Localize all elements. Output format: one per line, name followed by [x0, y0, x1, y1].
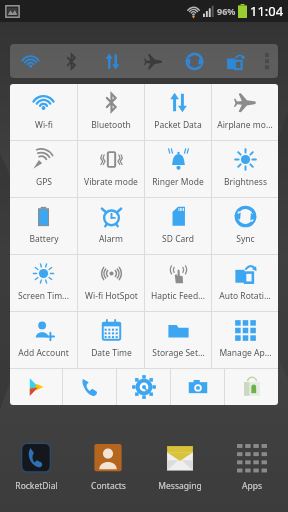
staticText: Messaging — [158, 480, 202, 492]
staticText: Sync — [236, 233, 255, 245]
staticText: Vibrate mode — [84, 176, 138, 188]
button[interactable]: Bluetooth — [78, 84, 144, 140]
button[interactable]: Ringer Mode — [145, 141, 211, 197]
staticText: Brightness — [224, 176, 267, 188]
staticText: Ringer Mode — [152, 176, 204, 188]
button[interactable]: Sync — [174, 44, 215, 78]
button[interactable]: Wi-fi — [10, 84, 77, 140]
button[interactable]: Add Account — [10, 312, 77, 368]
staticText: Wi-fi — [35, 119, 53, 131]
button[interactable]: Play Store — [10, 369, 62, 405]
button[interactable]: RocketDial — [0, 436, 72, 498]
button[interactable]: Manage Ap... — [212, 312, 278, 368]
button[interactable]: Screen Tim... — [10, 255, 77, 311]
staticText: Airplane mo... — [217, 119, 273, 131]
button[interactable]: Wi-fi HotSpot — [78, 255, 144, 311]
button[interactable]: GPS — [10, 141, 77, 197]
button[interactable]: SD Card — [145, 198, 211, 254]
staticText: Haptic Feed... — [151, 290, 205, 302]
button[interactable]: Wi-Fi — [10, 44, 51, 78]
staticText: Battery — [29, 233, 59, 245]
button[interactable]: Vibrate mode — [78, 141, 144, 197]
button[interactable]: Auto rotation — [215, 44, 256, 78]
button[interactable]: Apps — [216, 436, 288, 498]
staticText: Alarm — [99, 233, 123, 245]
staticText: 11:04 — [250, 2, 284, 20]
staticText: Contacts — [91, 480, 126, 492]
button[interactable]: Contacts — [72, 436, 144, 498]
button[interactable]: Date Time — [78, 312, 144, 368]
button[interactable]: Airplane mode — [133, 44, 174, 78]
staticText: 96% — [217, 5, 236, 17]
button[interactable]: Auto Rotati... — [212, 255, 278, 311]
staticText: SD Card — [162, 233, 194, 245]
staticText: Apps — [242, 480, 262, 492]
button[interactable]: Packet Data — [145, 84, 211, 140]
button[interactable]: Brightness — [212, 141, 278, 197]
button[interactable]: Storage Set... — [145, 312, 211, 368]
button[interactable]: Phone — [63, 369, 116, 405]
staticText: RocketDial — [15, 480, 58, 492]
staticText: Packet Data — [154, 119, 202, 131]
button[interactable]: Airplane mo... — [212, 84, 278, 140]
staticText: Bluetooth — [91, 119, 131, 131]
staticText: Manage Ap... — [219, 347, 272, 359]
staticText: Date Time — [91, 347, 132, 359]
button[interactable]: More options — [256, 44, 278, 78]
button[interactable]: Haptic Feed... — [145, 255, 211, 311]
staticText: Add Account — [18, 347, 69, 359]
staticText: Auto Rotati... — [219, 290, 271, 302]
staticText: Wi-fi HotSpot — [85, 290, 138, 302]
button[interactable]: Sync — [212, 198, 278, 254]
button[interactable]: Messaging — [144, 436, 216, 498]
button[interactable]: Battery — [10, 198, 77, 254]
button[interactable]: Camera — [171, 369, 224, 405]
button[interactable]: Alarm — [78, 198, 144, 254]
staticText: GPS — [36, 176, 52, 188]
button[interactable]: Market — [225, 369, 278, 405]
button[interactable]: Settings — [117, 369, 170, 405]
staticText: Screen Tim... — [18, 290, 69, 302]
button[interactable]: Bluetooth — [51, 44, 92, 78]
staticText: Storage Set... — [152, 347, 205, 359]
button[interactable]: Packet Data — [92, 44, 133, 78]
